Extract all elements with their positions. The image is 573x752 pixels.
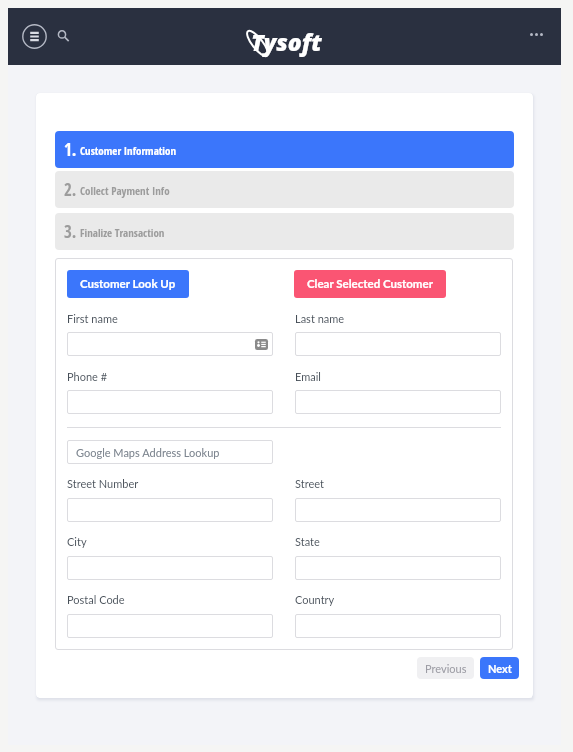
button[interactable]: Select contact — [67, 332, 273, 356]
staticText: Customer Look Up — [80, 277, 176, 291]
staticText: Last name — [295, 312, 345, 325]
staticText: Google Maps Address Lookup — [76, 446, 220, 459]
staticText: Phone # — [67, 370, 108, 383]
staticText: Clear Selected Customer — [307, 277, 433, 291]
staticText: 3. — [64, 220, 77, 243]
other: Select contact — [255, 339, 268, 350]
button[interactable] — [295, 332, 501, 356]
button[interactable] — [67, 390, 273, 414]
button[interactable] — [67, 498, 273, 522]
button[interactable]: 3. — [55, 213, 514, 250]
staticText: Finalize Transaction — [80, 225, 165, 240]
staticText: Street — [295, 477, 324, 490]
button[interactable] — [295, 556, 501, 580]
button[interactable]: Google Maps Address Lookup — [67, 440, 273, 464]
staticText: Email — [295, 370, 321, 383]
staticText: City — [67, 535, 87, 548]
button[interactable]: 1. — [55, 131, 514, 168]
button[interactable] — [295, 498, 501, 522]
button[interactable] — [295, 390, 501, 414]
button[interactable]: More options — [521, 25, 552, 44]
button[interactable]: Next — [480, 657, 519, 679]
staticText: Street Number — [67, 477, 139, 490]
staticText: Previous — [425, 662, 467, 675]
button[interactable] — [295, 614, 501, 638]
button[interactable]: 2. — [55, 171, 514, 208]
staticText: Collect Payment Info — [80, 183, 170, 198]
button[interactable]: Clear Selected Customer — [294, 270, 446, 298]
staticText: Next — [488, 662, 512, 675]
staticText: Country — [295, 593, 335, 606]
button[interactable]: Customer Look Up — [67, 270, 189, 298]
button[interactable]: Previous — [417, 657, 474, 679]
button[interactable] — [67, 556, 273, 580]
staticText: 2. — [64, 178, 77, 201]
staticText: Customer Information — [80, 143, 177, 158]
staticText: First name — [67, 312, 118, 325]
staticText: 1. — [64, 138, 77, 161]
staticText: Postal Code — [67, 593, 125, 606]
staticText: State — [295, 535, 320, 548]
button[interactable]: Menu — [20, 22, 49, 51]
staticText: Tysoft — [251, 26, 322, 57]
button[interactable]: Search — [52, 24, 72, 44]
button[interactable] — [67, 614, 273, 638]
